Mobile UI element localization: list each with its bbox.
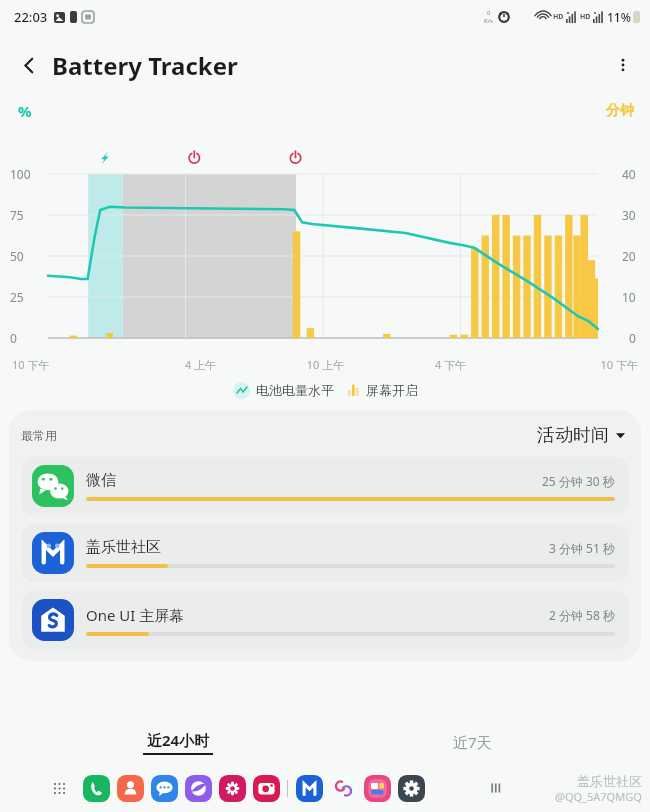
button[interactable]: Internet (183, 773, 213, 803)
staticText: 10 下午 (12, 357, 138, 372)
staticText: 25 (10, 289, 24, 305)
staticText: 3 分钟 51 秒 (549, 540, 615, 556)
staticText: 10 (622, 289, 636, 305)
staticText: 0 (629, 330, 636, 346)
button[interactable]: 近24小时 (137, 727, 219, 758)
staticText: 10 上午 (263, 357, 388, 372)
button[interactable]: Settings (396, 773, 426, 803)
staticText: 0 (487, 9, 491, 17)
staticText: 微信 (86, 471, 116, 490)
staticText: HD (580, 12, 591, 22)
staticText: HD (553, 12, 564, 22)
staticText: 100 (10, 166, 31, 182)
staticText: 0 (10, 330, 17, 346)
staticText: 25 分钟 30 秒 (542, 473, 615, 489)
staticText: 11% (607, 9, 631, 25)
button[interactable]: Samsung Members (294, 773, 324, 803)
staticText: Battery Tracker (52, 49, 238, 82)
button[interactable]: Gallery (217, 773, 247, 803)
staticText: K/s (484, 17, 493, 25)
button[interactable]: Camera (251, 773, 281, 803)
staticText: 盖乐世社区 (86, 538, 161, 557)
button[interactable]: Phone (81, 773, 111, 803)
button[interactable]: Store (362, 773, 392, 803)
staticText: @QQ_5A7QMGQ (555, 789, 642, 804)
staticText: 10 下午 (513, 357, 638, 372)
staticText: 50 (10, 248, 24, 264)
staticText: 4 下午 (388, 357, 513, 372)
staticText: 活动时间 (537, 424, 609, 447)
staticText: 2 分钟 58 秒 (549, 607, 615, 623)
staticText: 30 (622, 207, 636, 223)
button[interactable]: One UI 主屏幕 (21, 591, 629, 649)
staticText: 盖乐世社区 (577, 773, 642, 789)
staticText: % (18, 101, 32, 121)
button[interactable]: Messages (149, 773, 179, 803)
button[interactable]: Back (12, 48, 46, 82)
staticText: 电池电量水平 (256, 382, 334, 398)
staticText: 最常用 (21, 428, 57, 443)
staticText: 屏幕开启 (366, 382, 418, 398)
staticText: 近24小时 (147, 730, 210, 750)
button[interactable]: 微信 (21, 457, 629, 515)
staticText: 4 上午 (138, 357, 263, 372)
button[interactable]: More options (606, 48, 640, 82)
button[interactable]: Smart Switch (328, 773, 358, 803)
staticText: 20 (622, 248, 636, 264)
staticText: One UI 主屏幕 (86, 605, 185, 625)
button[interactable]: Recents (482, 775, 510, 801)
staticText: 40 (622, 166, 636, 182)
button[interactable]: 活动时间 (533, 422, 629, 449)
button[interactable]: 近7天 (445, 727, 500, 757)
button[interactable]: Apps (46, 775, 72, 801)
button[interactable]: Contacts (115, 773, 145, 803)
staticText: 分钟 (606, 102, 634, 120)
staticText: 22:03 (14, 8, 48, 26)
staticText: 75 (10, 207, 24, 223)
button[interactable]: 盖乐世社区 (21, 524, 629, 582)
